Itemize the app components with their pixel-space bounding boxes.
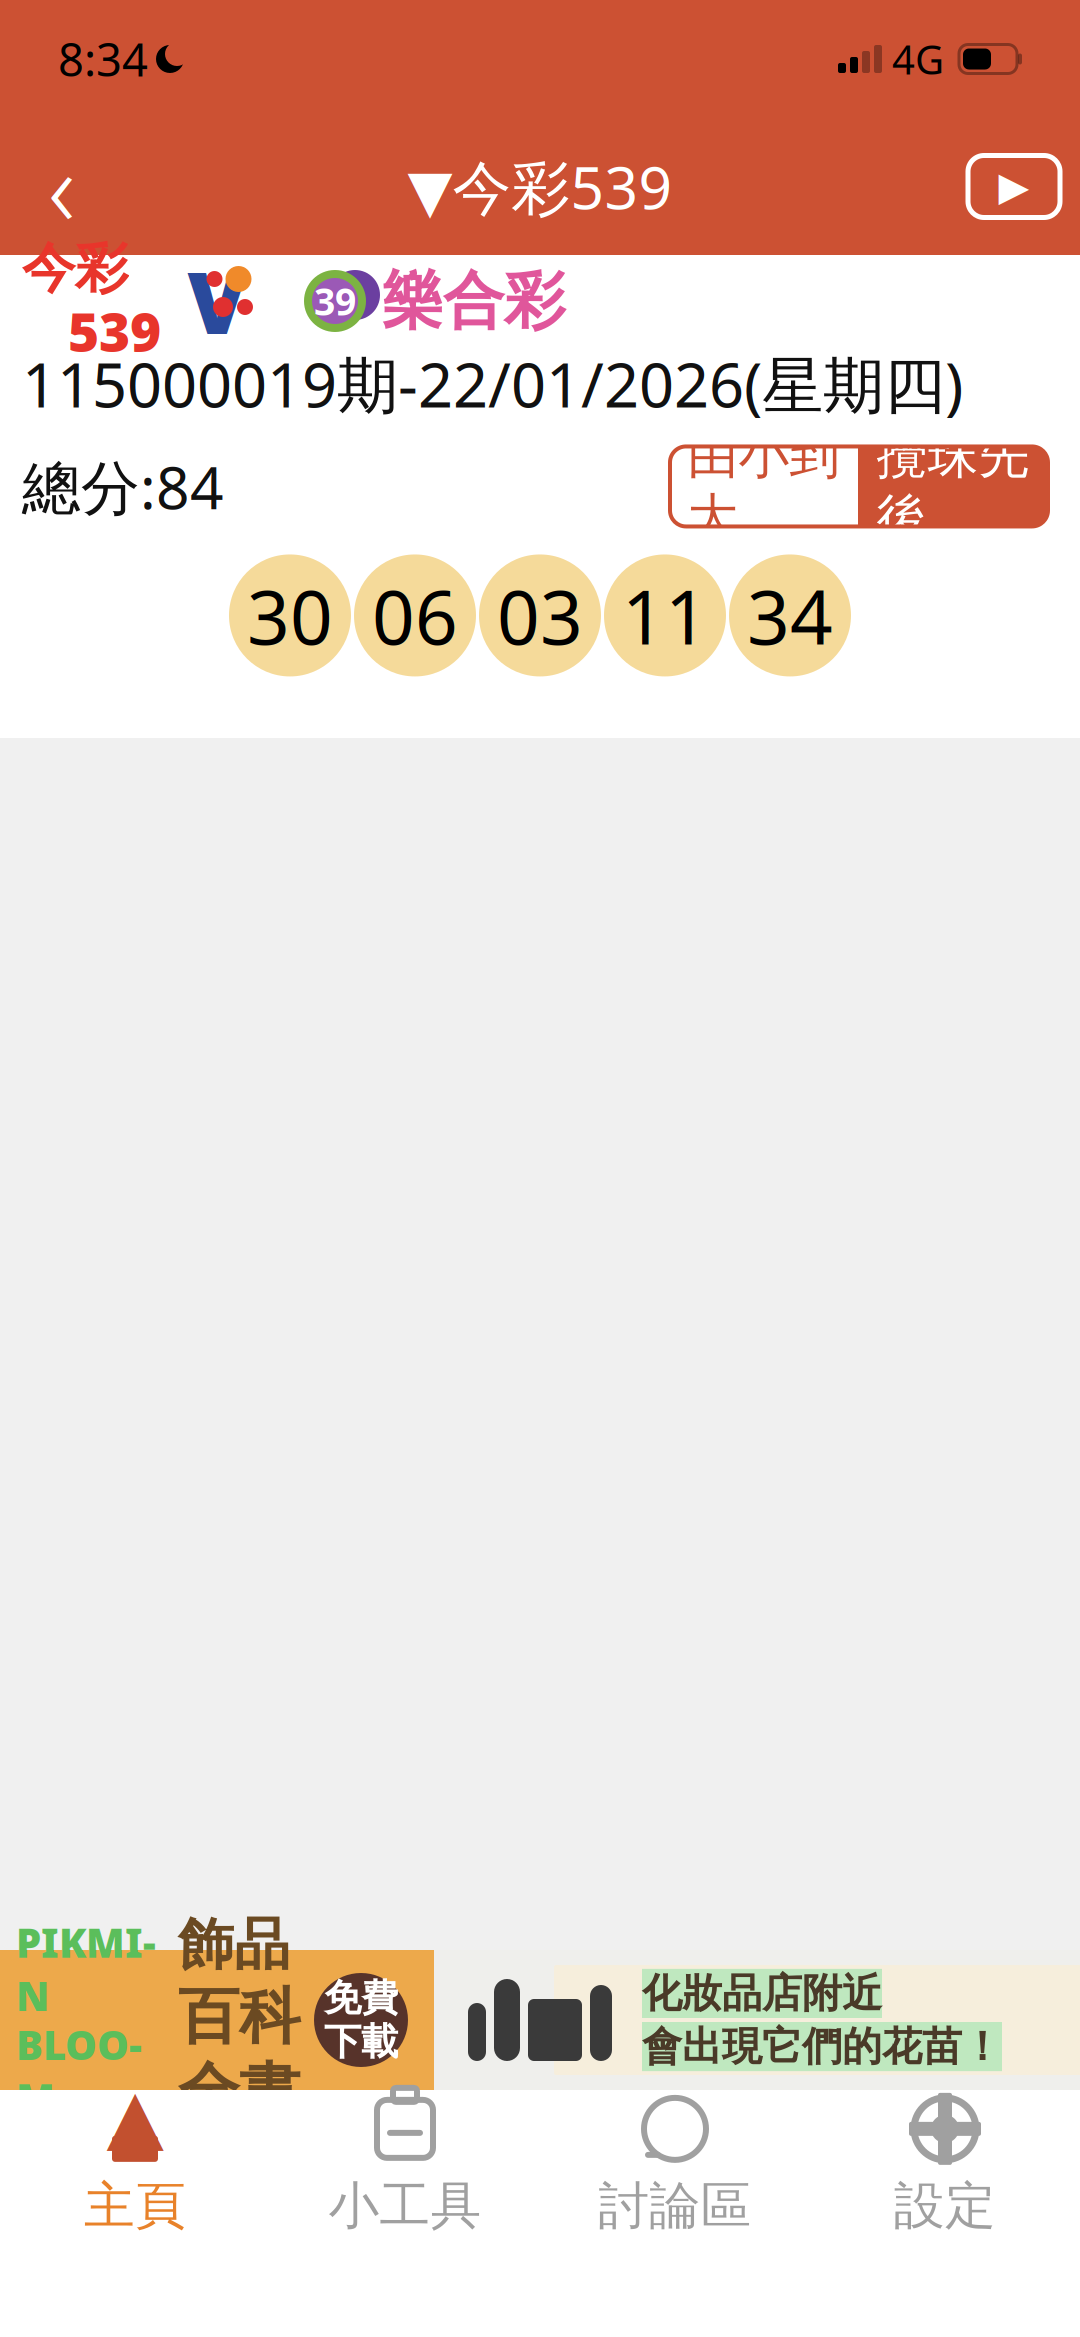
button[interactable]: 攪珠先後 xyxy=(858,446,1048,526)
staticText: 百科全書 xyxy=(178,1979,300,2130)
staticText: 化妝品店附近 xyxy=(642,1969,882,2018)
staticText: 11 xyxy=(622,566,708,665)
staticText: 樂合彩 xyxy=(382,263,565,339)
staticText: 539 xyxy=(68,295,161,366)
staticText: 39 xyxy=(314,276,356,326)
button[interactable]: ▲ xyxy=(0,2090,270,2240)
button[interactable]: Video xyxy=(962,143,1066,229)
staticText: 主頁 xyxy=(84,2175,186,2237)
button[interactable]: Advertisement xyxy=(0,1950,1080,2090)
staticText: V xyxy=(187,244,246,358)
button[interactable]: Back xyxy=(14,138,110,234)
staticText: 30 xyxy=(247,566,333,665)
staticText: BLOOM xyxy=(16,2018,142,2124)
staticText: 由小到大 xyxy=(687,424,840,549)
staticText: 總分:84 xyxy=(22,447,224,525)
staticText: 今彩 xyxy=(22,236,128,301)
staticText: ▲ xyxy=(106,2073,163,2158)
staticText: 設定 xyxy=(894,2175,996,2237)
staticText: 攪珠先後 xyxy=(876,424,1029,549)
button[interactable]: 討論區 xyxy=(540,2090,810,2240)
staticText: 討論區 xyxy=(598,2175,751,2237)
staticText: ▶ xyxy=(998,164,1029,209)
staticText: 115000019期-22/01/2026(星期四) xyxy=(22,343,963,424)
staticText: 會出現它們的花苗！ xyxy=(642,2022,1002,2071)
staticText: 下載 xyxy=(324,2019,398,2065)
staticText: 06 xyxy=(372,566,458,665)
staticText: ▼今彩539 xyxy=(407,147,672,225)
button[interactable]: 小工具 xyxy=(270,2090,540,2240)
staticText: 飾品 xyxy=(178,1910,290,1979)
staticText: 8:34 xyxy=(58,29,148,89)
button[interactable]: 由小到大 xyxy=(670,446,858,526)
button[interactable]: 設定 xyxy=(810,2090,1080,2240)
staticText: 03 xyxy=(497,566,583,665)
staticText: 34 xyxy=(747,566,833,665)
staticText: 4G xyxy=(892,32,944,85)
staticText: 免費 xyxy=(324,1975,398,2021)
staticText: 小工具 xyxy=(328,2175,481,2237)
staticText: ‹ xyxy=(48,117,76,255)
staticText: PIKMIN xyxy=(16,1916,156,2022)
